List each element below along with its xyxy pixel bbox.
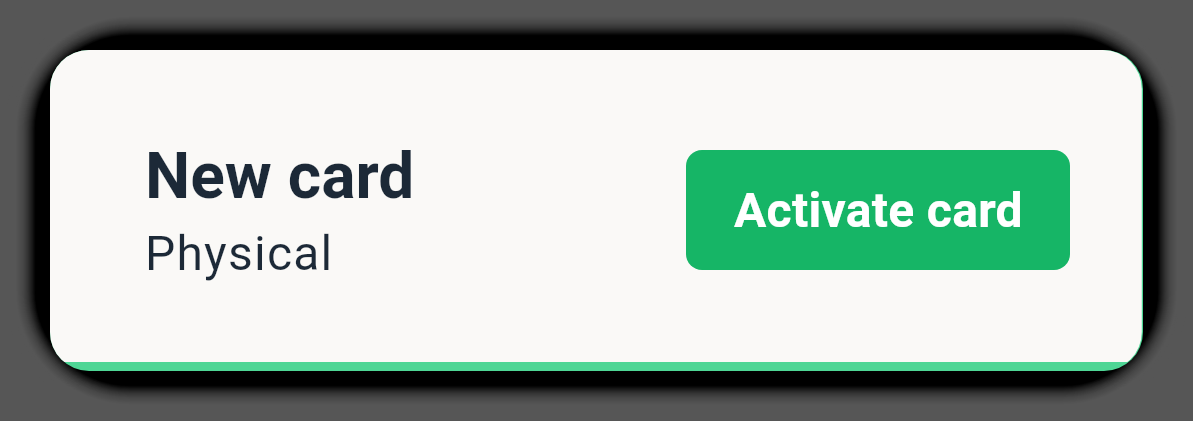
button[interactable]: New card <box>50 50 1143 371</box>
button[interactable]: Activate card <box>686 150 1070 270</box>
staticText: Activate card <box>734 182 1023 238</box>
staticText: Physical <box>145 225 334 281</box>
staticText: New card <box>145 139 415 214</box>
